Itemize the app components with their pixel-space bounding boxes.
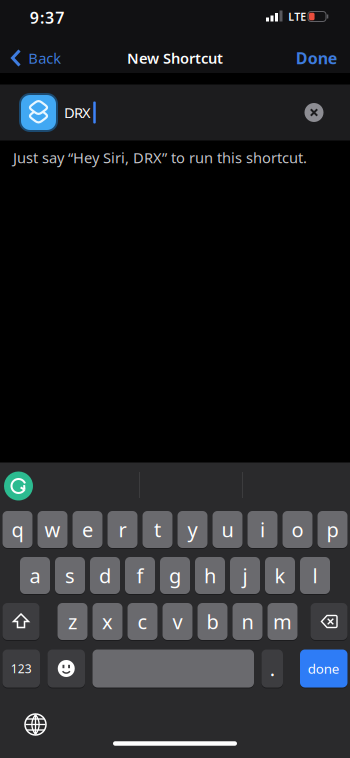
button[interactable]: f [125, 557, 155, 594]
staticText: e [82, 516, 93, 543]
staticText: t [154, 516, 161, 543]
staticText: x [102, 608, 113, 635]
staticText: DRX [64, 103, 91, 122]
button[interactable]: i [247, 511, 277, 548]
staticText: q [11, 516, 23, 543]
button[interactable] [304, 103, 323, 122]
staticText: y [187, 516, 197, 543]
button[interactable] [47, 649, 85, 687]
button[interactable] [92, 649, 254, 687]
button[interactable]: z [57, 603, 87, 640]
staticText: l [312, 562, 317, 589]
button[interactable]: g [160, 557, 190, 594]
button[interactable]: u [212, 511, 242, 548]
button[interactable] [310, 603, 347, 640]
staticText: Just say “Hey Siri, DRX” to run this sho… [13, 148, 307, 167]
button[interactable]: x [92, 603, 122, 640]
staticText: d [99, 562, 111, 589]
button[interactable]: n [232, 603, 262, 640]
button[interactable] [24, 713, 47, 736]
button[interactable]: m [267, 603, 297, 640]
staticText: w [44, 516, 60, 543]
staticText: u [221, 516, 233, 543]
staticText: . [270, 655, 275, 682]
button[interactable]: k [265, 557, 295, 594]
staticText: m [273, 608, 292, 635]
staticText: g [169, 562, 181, 589]
button[interactable]: e [72, 511, 102, 548]
button[interactable]: 123 [2, 649, 40, 687]
staticText: b [206, 608, 218, 635]
staticText: LTE [288, 9, 306, 24]
staticText: f [136, 562, 143, 589]
staticText: c [137, 608, 147, 635]
staticText: z [68, 608, 77, 635]
button[interactable] [4, 471, 33, 500]
staticText: v [172, 608, 182, 635]
button[interactable]: . [261, 649, 283, 687]
button[interactable]: Back [9, 43, 69, 73]
button[interactable]: l [300, 557, 330, 594]
staticText: p [326, 516, 338, 543]
button[interactable]: h [195, 557, 225, 594]
staticText: 9:37 [30, 7, 64, 28]
staticText: done [308, 660, 340, 677]
button[interactable]: p [317, 511, 347, 548]
staticText: i [260, 516, 265, 543]
staticText: 123 [11, 660, 32, 676]
staticText: o [291, 516, 303, 543]
staticText: Back [28, 48, 61, 68]
button[interactable]: a [20, 557, 50, 594]
button[interactable]: d [90, 557, 120, 594]
button[interactable]: w [37, 511, 67, 548]
button[interactable]: b [197, 603, 227, 640]
staticText: k [274, 562, 285, 589]
button[interactable]: Done [292, 43, 342, 73]
staticText: h [204, 562, 216, 589]
button[interactable]: y [177, 511, 207, 548]
button[interactable]: r [107, 511, 137, 548]
staticText: n [241, 608, 253, 635]
button[interactable]: done [300, 649, 347, 687]
button[interactable] [2, 603, 39, 640]
button[interactable]: t [142, 511, 172, 548]
staticText: New Shortcut [127, 48, 223, 68]
staticText: a [29, 562, 40, 589]
button[interactable]: v [162, 603, 192, 640]
button[interactable]: q [2, 511, 32, 548]
staticText: s [65, 562, 75, 589]
staticText: Done [296, 47, 338, 69]
button[interactable]: c [127, 603, 157, 640]
button[interactable]: o [282, 511, 312, 548]
staticText: j [242, 562, 247, 589]
button[interactable]: j [230, 557, 260, 594]
button[interactable]: s [55, 557, 85, 594]
staticText: r [118, 516, 126, 543]
